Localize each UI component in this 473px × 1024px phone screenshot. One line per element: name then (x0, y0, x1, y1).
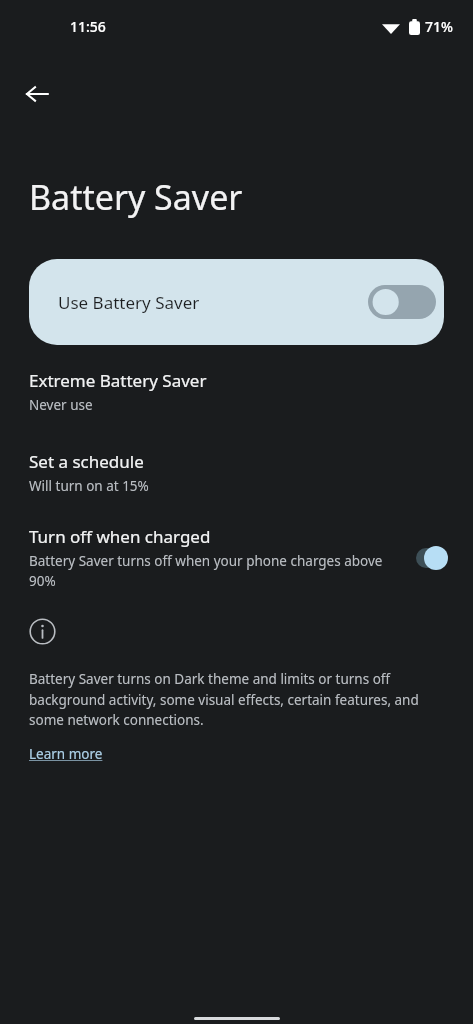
button[interactable]: Set a schedule (0, 448, 473, 497)
button[interactable]: Back (13, 70, 61, 118)
button[interactable]: Use Battery Saver (29, 259, 444, 345)
staticText: Set a schedule (29, 450, 144, 473)
button[interactable]: Extreme Battery Saver (0, 367, 473, 416)
staticText: Never use (29, 396, 93, 414)
button[interactable]: Turn off when charged (0, 525, 473, 590)
staticText: Will turn on at 15% (29, 477, 149, 495)
staticText: Turn off when charged (29, 525, 211, 548)
staticText: Extreme Battery Saver (29, 369, 207, 392)
button[interactable]: Turn off when charged toggle (409, 541, 453, 575)
button[interactable]: Learn more (29, 745, 103, 763)
staticText: Learn more (29, 745, 103, 763)
staticText: 11:56 (70, 17, 106, 36)
staticText: Battery Saver turns on Dark theme and li… (29, 670, 448, 729)
staticText: Battery Saver (29, 174, 243, 220)
staticText: Use Battery Saver (58, 291, 200, 314)
staticText: Battery Saver turns off when your phone … (29, 552, 403, 590)
staticText: 71% (425, 17, 453, 36)
